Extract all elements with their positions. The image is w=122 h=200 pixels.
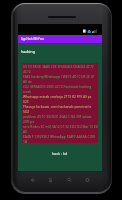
staticText: FAE2 hacking Whatsapp 1WE73 4D1C ER 2E 3… — [23, 74, 98, 84]
staticText: problem 49 7C 5SD5D1 40A2 C B4 39F whats… — [23, 114, 98, 124]
staticText: hack : hd — [52, 151, 68, 156]
button[interactable]: Search — [64, 173, 74, 187]
staticText: 69 1D 88 0E 3AB0 CEE 3F606403 CEAC84 4C7… — [23, 64, 98, 74]
staticText: App Hack Wifi Pass — [21, 37, 45, 41]
staticText: hacking — [21, 49, 35, 54]
button[interactable]: Back — [27, 173, 37, 187]
staticText: EA4A F 13F2F2E2 WhtasApp F2AFF AA56A C2E… — [23, 134, 98, 143]
button[interactable]: hack : hd — [49, 150, 71, 157]
staticText: serv Redes 3C mQ 5A12 01 92 CD21E2 Mai 1… — [23, 124, 98, 134]
staticText: Whatsapp estrab crackeja 2713 R2 FF5 A9 … — [23, 94, 98, 104]
button[interactable]: Home — [82, 173, 92, 187]
staticText: F5assgs facboow .com hackando penetrat l… — [23, 104, 98, 114]
staticText: C02 3ER5A0D5 2E05 4C72 Facebook hacking … — [23, 84, 98, 94]
button[interactable]: Recent apps — [45, 173, 55, 187]
